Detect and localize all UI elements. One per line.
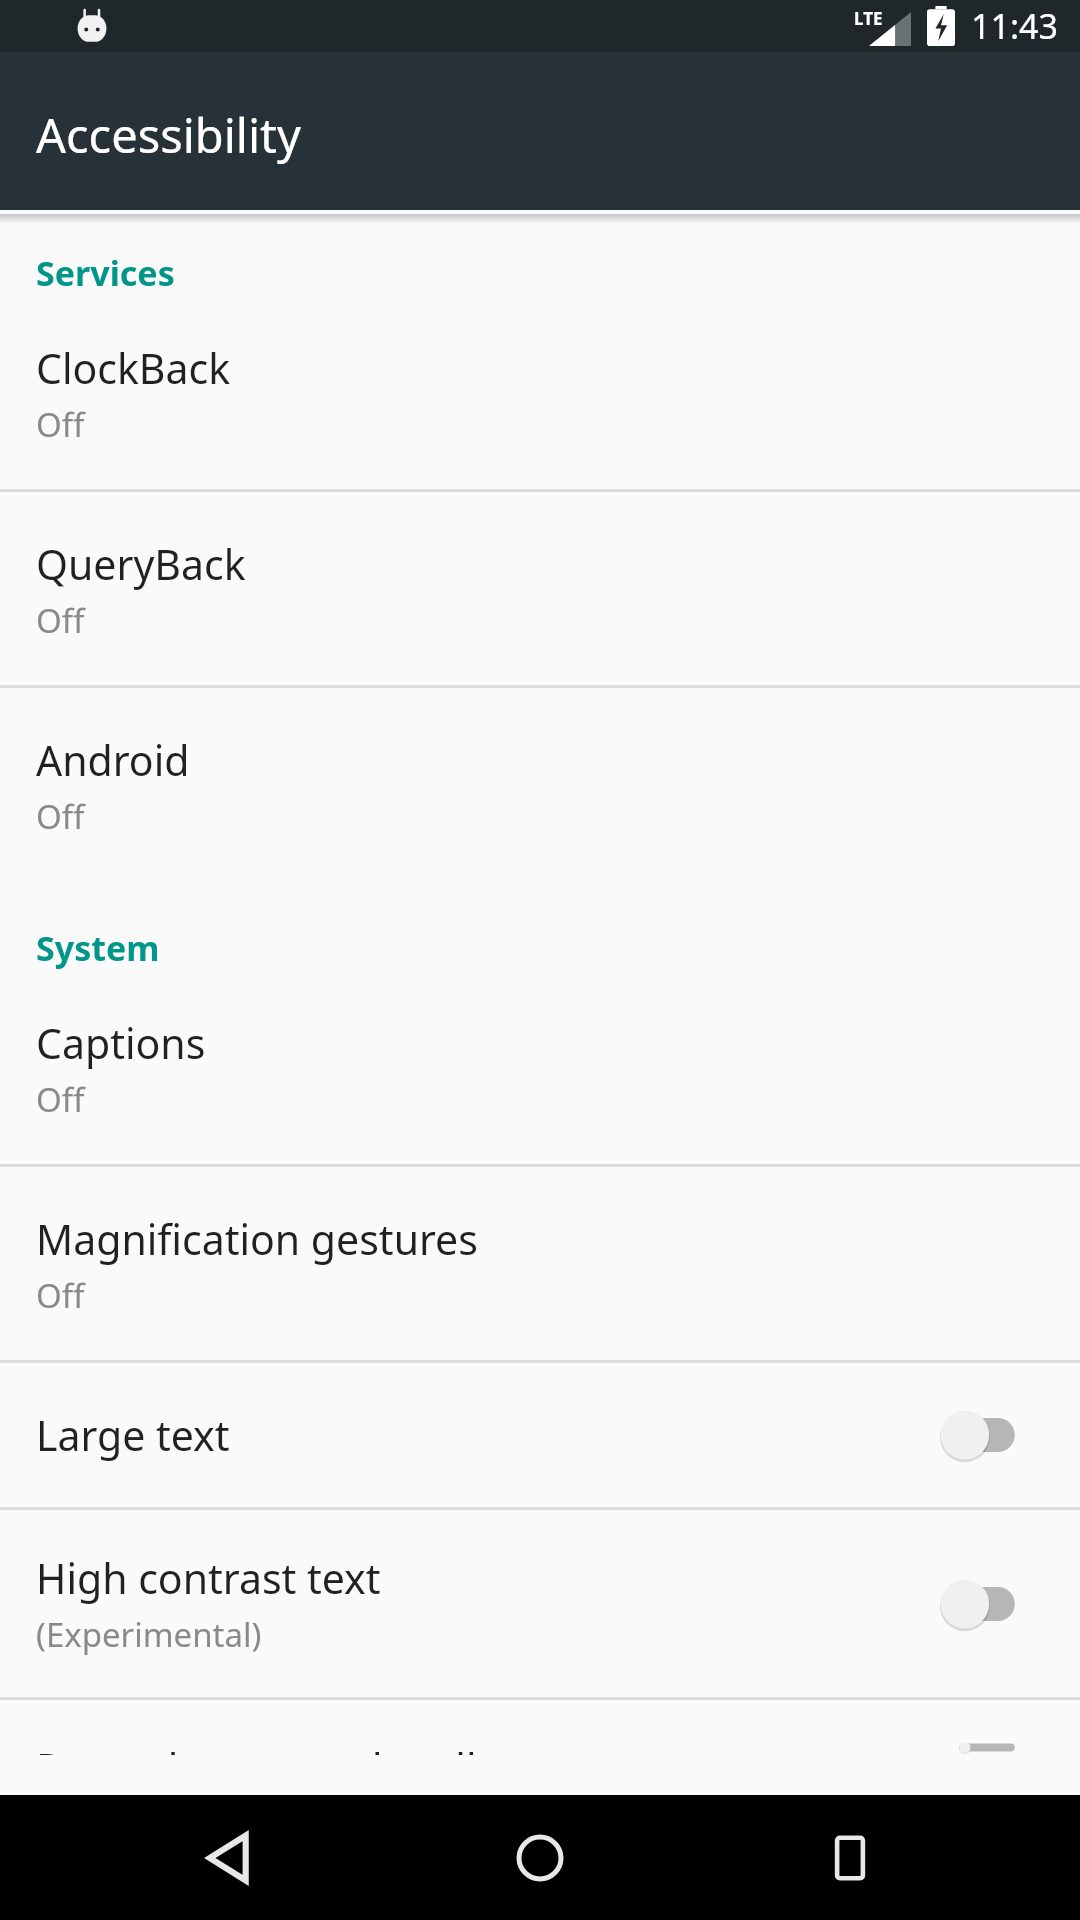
button[interactable]: Toggle [938, 1740, 1034, 1755]
button[interactable]: Back [150, 1795, 310, 1920]
staticText: Off [36, 598, 85, 643]
button[interactable]: Captions [0, 971, 1080, 1164]
staticText: Android [36, 732, 190, 788]
button[interactable]: Magnification gestures [0, 1167, 1080, 1360]
staticText: Off [36, 1077, 85, 1122]
staticText: High contrast text [36, 1550, 381, 1606]
staticText: Power button ends call [36, 1740, 477, 1755]
staticText: Magnification gestures [36, 1211, 478, 1267]
staticText: Off [36, 794, 85, 839]
staticText: System [36, 925, 160, 971]
staticText: ClockBack [36, 340, 231, 396]
button[interactable]: QueryBack [0, 492, 1080, 685]
button[interactable]: ClockBack [0, 296, 1080, 489]
staticText: (Experimental) [36, 1612, 262, 1657]
staticText: Accessibility [36, 103, 302, 167]
staticText: Large text [36, 1407, 230, 1463]
button[interactable]: Recent apps [770, 1795, 930, 1920]
button[interactable]: Power button ends call [0, 1700, 1080, 1795]
button[interactable]: Home [460, 1795, 620, 1920]
button[interactable]: Large text [0, 1363, 1080, 1507]
button[interactable]: Android [0, 688, 1080, 881]
staticText: Captions [36, 1015, 206, 1071]
button[interactable]: High contrast text [0, 1510, 1080, 1697]
staticText: Off [36, 1273, 85, 1318]
staticText: QueryBack [36, 536, 246, 592]
staticText: LTE [854, 7, 883, 30]
staticText: Services [36, 250, 175, 296]
staticText: 11:43 [971, 3, 1058, 49]
staticText: Off [36, 402, 85, 447]
button[interactable]: Toggle [938, 1403, 1034, 1467]
button[interactable]: Toggle [938, 1572, 1034, 1636]
